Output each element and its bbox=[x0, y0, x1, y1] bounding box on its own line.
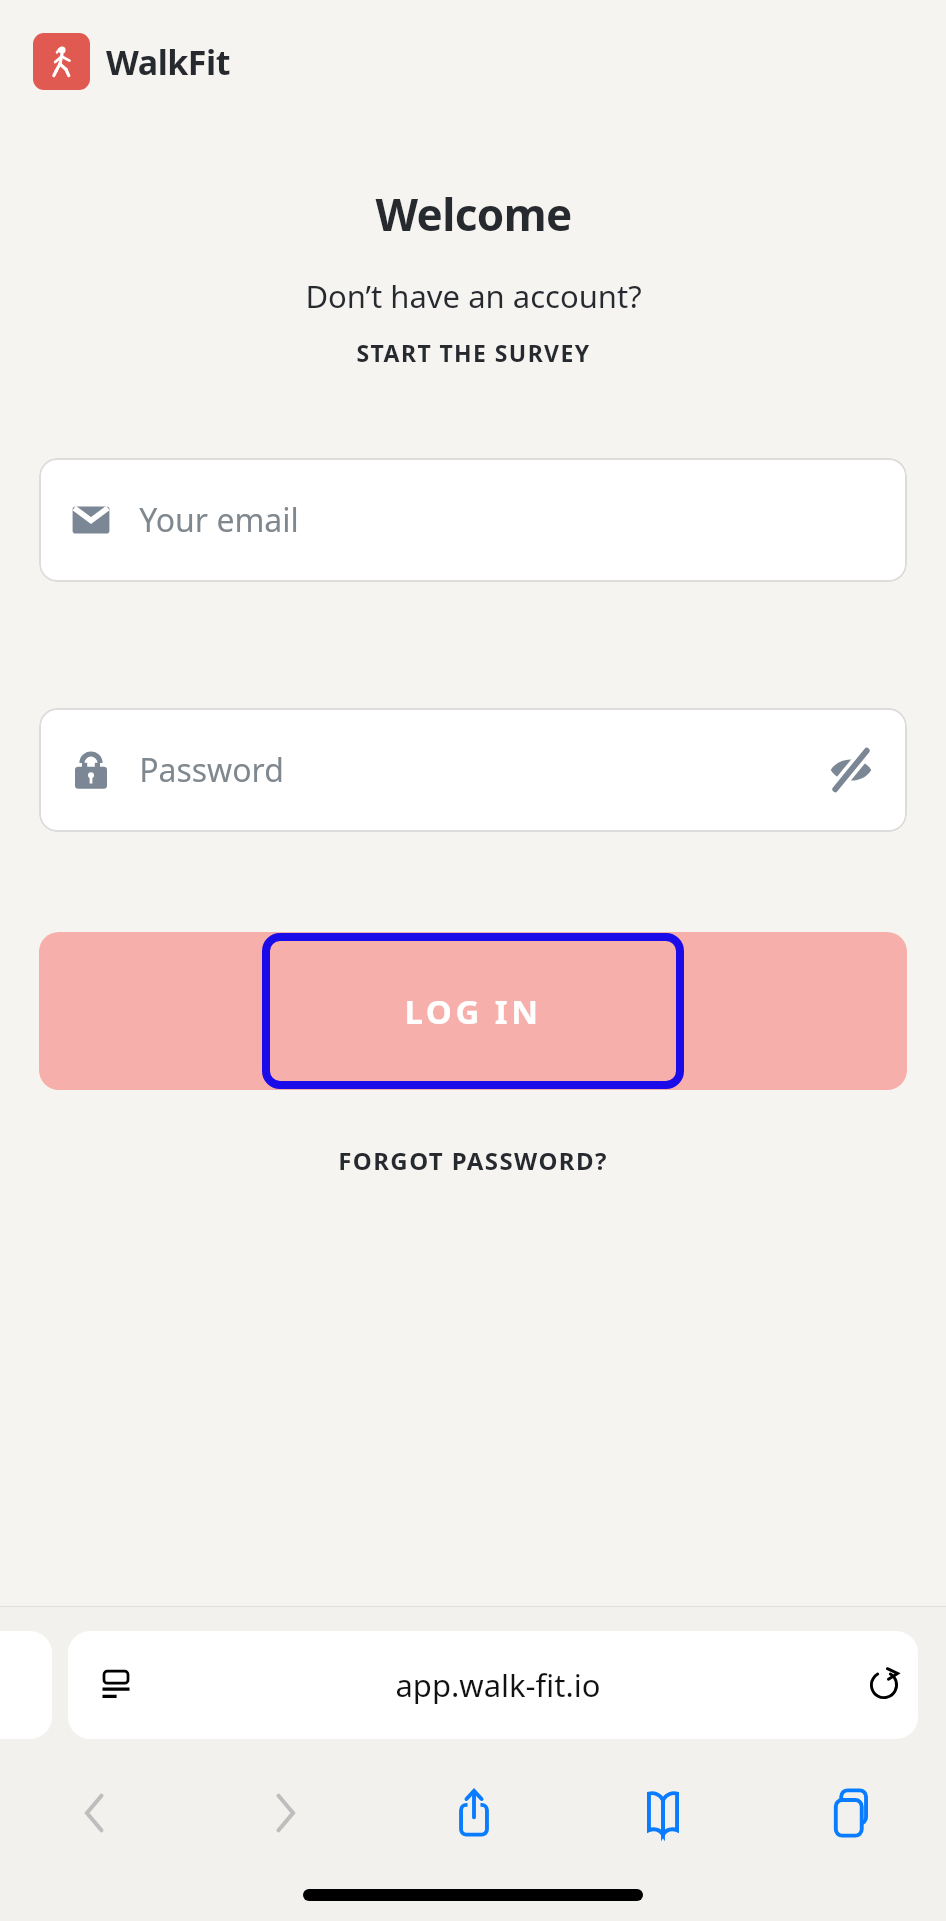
staticText: WalkFit bbox=[106, 39, 230, 85]
button[interactable]: LOG IN bbox=[39, 932, 907, 1090]
button[interactable]: Tabs bbox=[757, 1765, 946, 1861]
staticText: Password bbox=[139, 748, 284, 792]
button[interactable]: Page settings bbox=[68, 1631, 918, 1739]
button[interactable]: Forward bbox=[190, 1765, 379, 1861]
button[interactable]: Reload bbox=[858, 1659, 910, 1711]
button[interactable]: Bookmarks bbox=[568, 1765, 757, 1861]
staticText: Don’t have an account? bbox=[305, 275, 642, 317]
button[interactable]: Password bbox=[39, 708, 907, 832]
button[interactable]: START THE SURVEY bbox=[344, 333, 603, 372]
button[interactable]: FORGOT PASSWORD? bbox=[326, 1138, 620, 1183]
button[interactable]: Show password bbox=[811, 730, 891, 810]
staticText: START THE SURVEY bbox=[356, 337, 591, 368]
button[interactable]: Back bbox=[0, 1765, 190, 1861]
button[interactable]: WalkFit bbox=[33, 33, 230, 90]
button[interactable]: Share bbox=[379, 1765, 568, 1861]
staticText: Welcome bbox=[375, 184, 572, 244]
staticText: FORGOT PASSWORD? bbox=[338, 1144, 608, 1177]
staticText: LOG IN bbox=[404, 989, 542, 1034]
staticText: Your email bbox=[139, 498, 299, 542]
staticText: app.walk-fit.io bbox=[395, 1664, 601, 1706]
button[interactable]: Your email bbox=[39, 458, 907, 582]
button[interactable]: Page settings bbox=[94, 1663, 138, 1707]
